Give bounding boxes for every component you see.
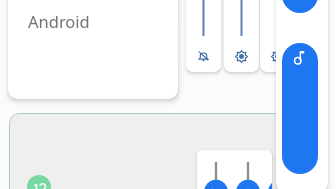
button[interactable]: Android <box>8 0 178 99</box>
staticText: Android <box>28 10 90 32</box>
button[interactable]: Volume panel <box>197 150 272 189</box>
button[interactable] <box>9 113 299 189</box>
button[interactable]: Ring mode <box>282 0 318 13</box>
button[interactable]: Media volume <box>282 43 318 174</box>
button[interactable]: Brightness <box>260 0 295 72</box>
button[interactable]: Ring volume <box>186 0 221 72</box>
button[interactable]: Brightness <box>224 0 259 72</box>
